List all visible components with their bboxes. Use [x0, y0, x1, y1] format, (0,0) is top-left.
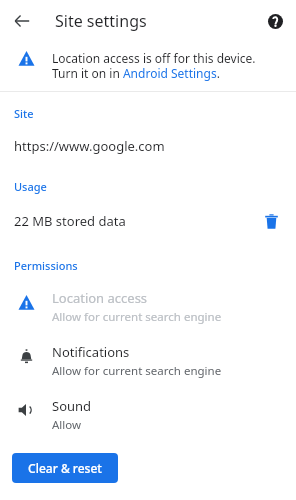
button[interactable]: Back: [6, 5, 38, 37]
button[interactable]: Notifications: [0, 329, 296, 383]
staticText: Allow for current search engine: [52, 309, 222, 325]
button[interactable]: Sound: [0, 383, 296, 437]
button[interactable]: Location access is off for this device. …: [0, 42, 296, 91]
staticText: Sound: [52, 397, 92, 415]
staticText: Site: [14, 106, 34, 121]
staticText: 22 MB stored data: [14, 212, 258, 230]
button[interactable]: Location access: [0, 273, 296, 329]
button[interactable]: 22 MB stored data: [0, 194, 296, 246]
staticText: Allow: [52, 417, 82, 433]
button[interactable]: Delete stored data: [258, 208, 284, 234]
button[interactable]: https://www.google.com: [0, 121, 296, 169]
staticText: Notifications: [52, 343, 130, 361]
staticText: Usage: [14, 179, 47, 194]
button[interactable]: Clear & reset: [12, 453, 118, 483]
staticText: Permissions: [14, 258, 78, 273]
staticText: Location access is off for this device. …: [52, 50, 256, 81]
staticText: Site settings: [55, 10, 147, 32]
staticText: Clear & reset: [28, 460, 102, 476]
staticText: Allow for current search engine: [52, 363, 222, 379]
staticText: Location access: [52, 289, 148, 307]
staticText: https://www.google.com: [14, 137, 165, 155]
button[interactable]: Help: [260, 6, 290, 36]
